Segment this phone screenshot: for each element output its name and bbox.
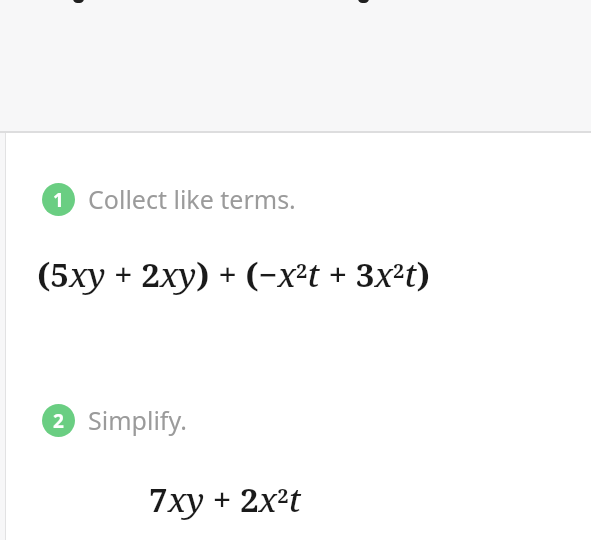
staticText: 7xy + 2x2t <box>149 477 302 522</box>
staticText: 1 <box>53 187 64 213</box>
staticText: 2 <box>53 408 64 434</box>
button[interactable]: 1 <box>6 182 591 216</box>
staticText: Collect like terms. <box>88 182 296 216</box>
button[interactable]: 2 <box>6 403 591 437</box>
staticText: Simplify. <box>88 403 187 437</box>
staticText: (5xy + 2xy) + (−x2t + 3x2t) <box>37 252 431 297</box>
